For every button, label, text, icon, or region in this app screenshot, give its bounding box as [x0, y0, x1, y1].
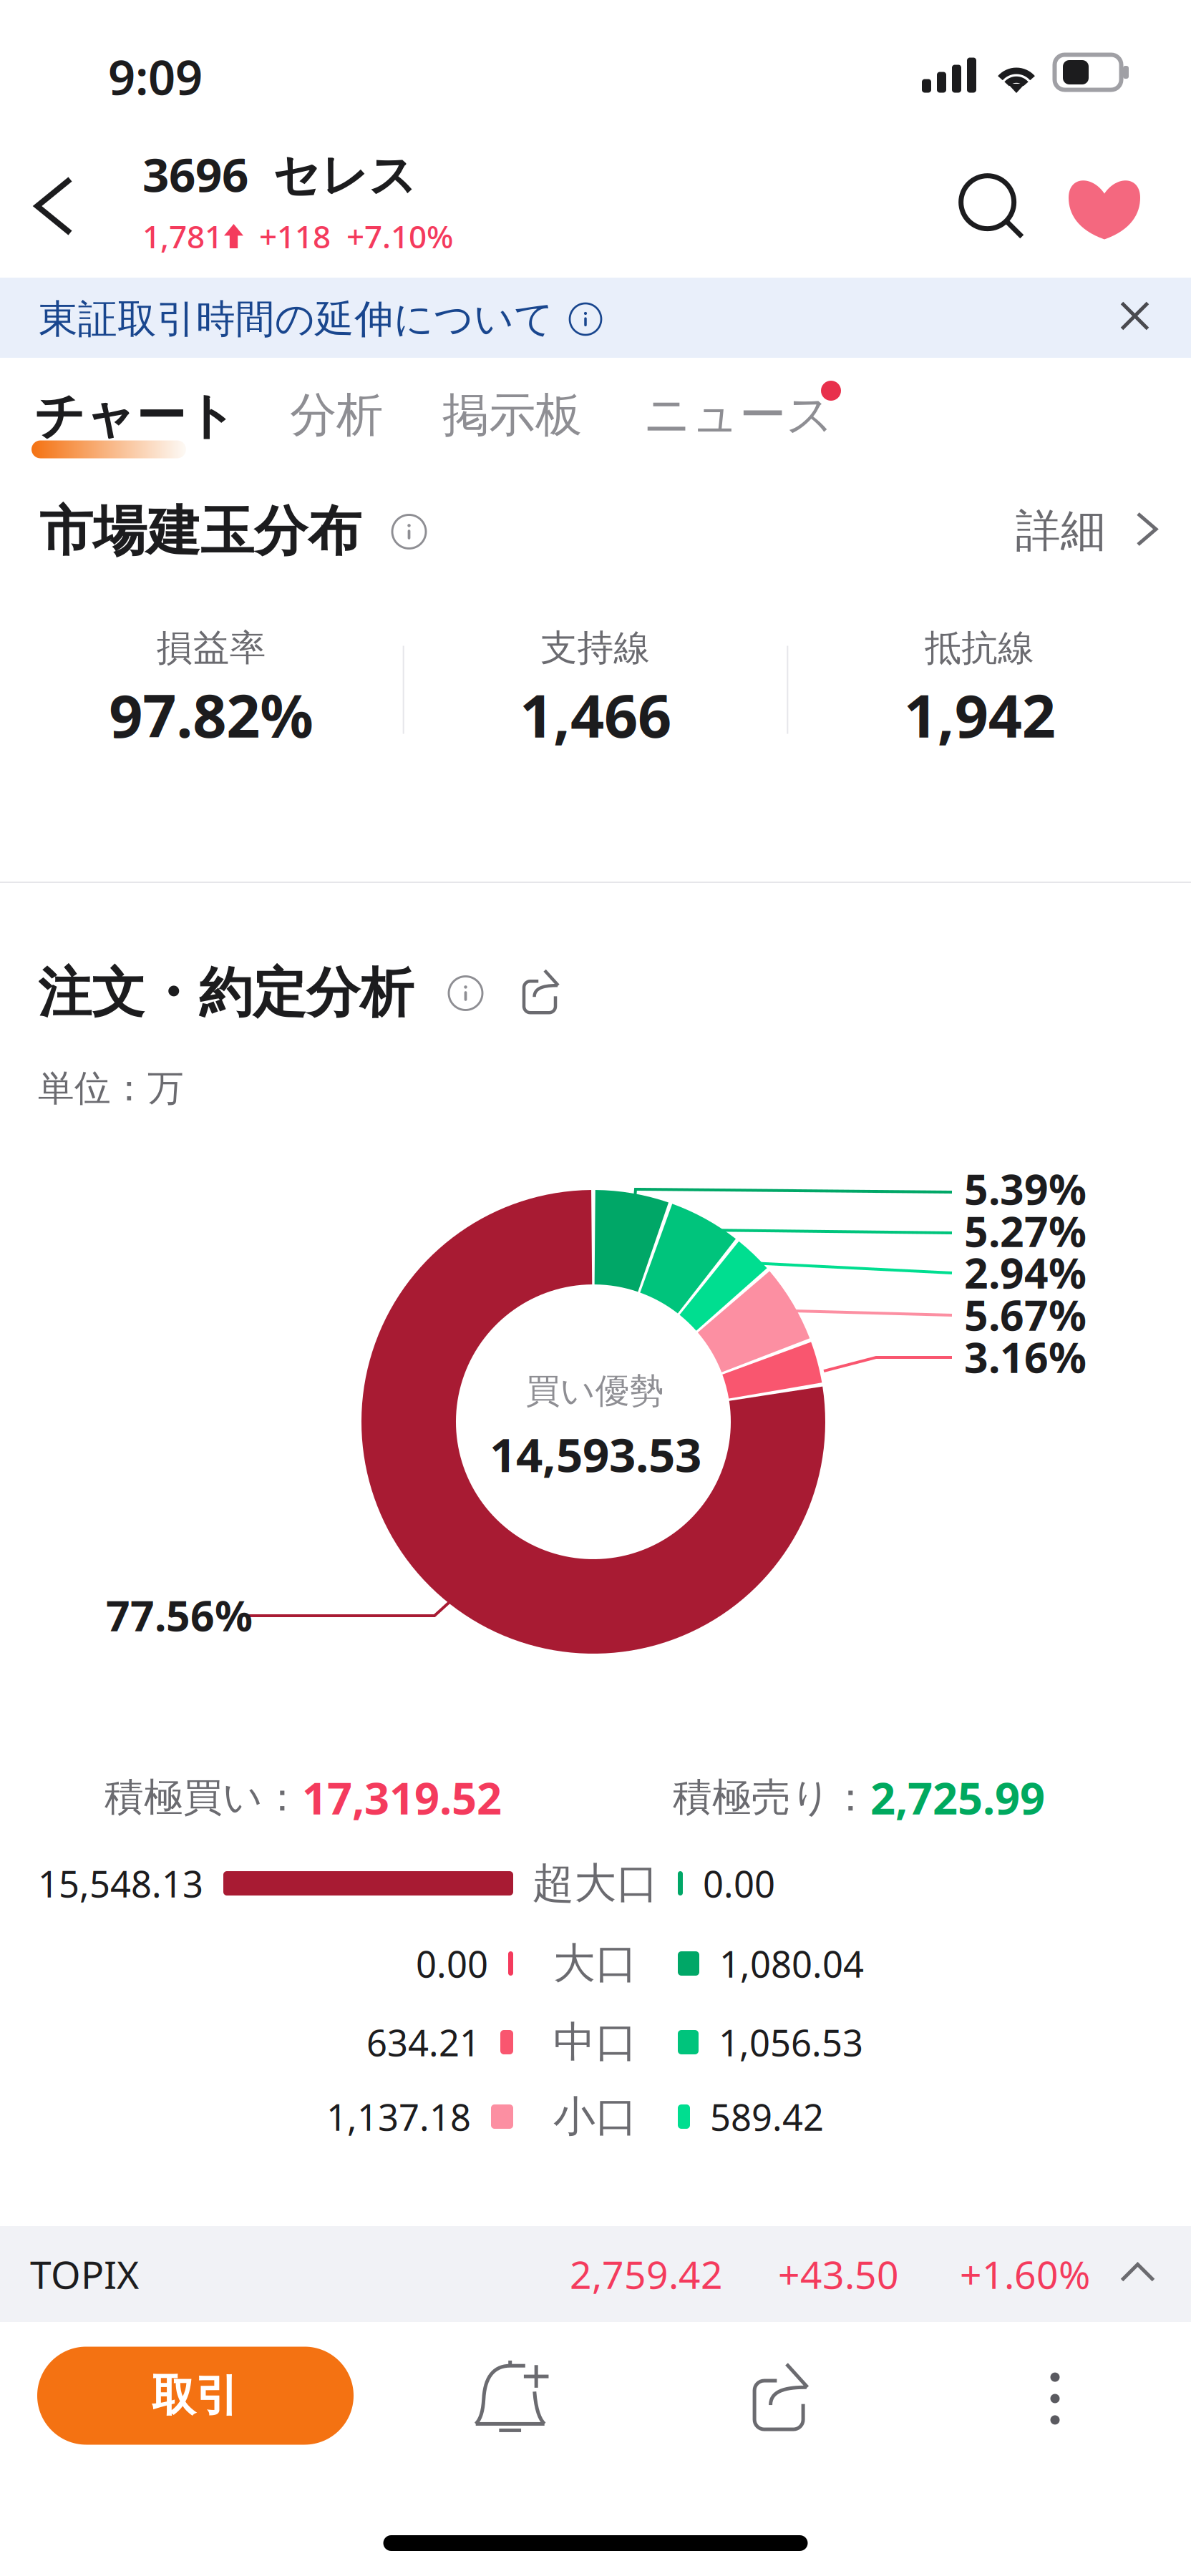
staticText: 積極買い：: [104, 1773, 302, 1821]
staticText: チャート: [34, 386, 236, 447]
staticText: 15,548.13: [38, 1859, 203, 1907]
staticText: 抵抗線: [925, 626, 1034, 670]
button[interactable]: 取引: [37, 2347, 354, 2445]
button[interactable]: Share: [722, 2345, 844, 2452]
button[interactable]: 東証取引時間の延伸について: [0, 278, 1191, 358]
staticText: 3.16%: [964, 1329, 1087, 1385]
staticText: 5.27%: [964, 1203, 1087, 1259]
button[interactable]: More options: [994, 2345, 1116, 2452]
staticText: 1,781: [142, 215, 223, 257]
staticText: 0.00: [416, 1939, 488, 1988]
staticText: 支持線: [541, 626, 650, 670]
button[interactable]: Add to favourites: [1058, 163, 1151, 256]
staticText: 2.94%: [964, 1244, 1087, 1300]
staticText: 2,759.42: [570, 2249, 723, 2299]
button[interactable]: チャート: [31, 389, 246, 475]
staticText: 589.42: [710, 2093, 824, 2141]
staticText: 0.00: [703, 1859, 775, 1907]
staticText: 1,056.53: [719, 2018, 863, 2066]
staticText: +118 +7.10%: [243, 215, 453, 257]
button[interactable]: 掲示板: [442, 386, 582, 444]
staticText: 詳細: [1016, 503, 1106, 558]
staticText: 97.82%: [109, 675, 314, 754]
staticText: 77.56%: [106, 1587, 253, 1643]
staticText: 注文・約定分析: [38, 960, 414, 1026]
staticText: 取引: [152, 2369, 239, 2423]
button[interactable]: Share analysis: [524, 971, 562, 1016]
staticText: +1.60%: [960, 2249, 1090, 2299]
button[interactable]: 分析: [290, 386, 383, 444]
button[interactable]: Search: [948, 163, 1041, 256]
staticText: 東証取引時間の延伸について: [39, 295, 554, 343]
staticText: 5.39%: [964, 1161, 1087, 1216]
staticText: 分析: [290, 386, 383, 444]
staticText: 市場建玉分布: [39, 499, 361, 564]
staticText: 9:09: [108, 45, 203, 108]
button[interactable]: Back: [14, 162, 99, 255]
staticText: 積極売り：: [673, 1773, 870, 1821]
staticText: TOPIX: [30, 2249, 139, 2299]
staticText: 掲示板: [442, 386, 582, 444]
button[interactable]: Price alert: [454, 2345, 576, 2452]
button[interactable]: ニュース: [643, 384, 851, 447]
staticText: +43.50: [778, 2249, 899, 2299]
staticText: 単位：万: [38, 1066, 184, 1111]
staticText: 2,725.99: [870, 1768, 1045, 1827]
staticText: 中口: [553, 2016, 638, 2068]
staticText: 損益率: [157, 626, 266, 670]
staticText: 大口: [553, 1938, 638, 1989]
staticText: 3696 セレス: [142, 143, 417, 205]
staticText: 1,080.04: [719, 1939, 864, 1988]
staticText: ニュース: [643, 386, 834, 444]
staticText: 17,319.52: [302, 1768, 502, 1827]
staticText: 1,942: [904, 675, 1056, 754]
staticText: 5.67%: [964, 1287, 1087, 1342]
staticText: 買い優勢: [526, 1370, 664, 1412]
button[interactable]: 詳細: [1016, 503, 1160, 558]
staticText: 1,466: [520, 675, 671, 754]
staticText: 634.21: [366, 2018, 480, 2066]
button[interactable]: TOPIX: [0, 2226, 1191, 2322]
staticText: 1,137.18: [326, 2093, 471, 2141]
staticText: 超大口: [532, 1858, 659, 1909]
staticText: 14,593.53: [490, 1423, 701, 1485]
staticText: 小口: [553, 2091, 638, 2142]
